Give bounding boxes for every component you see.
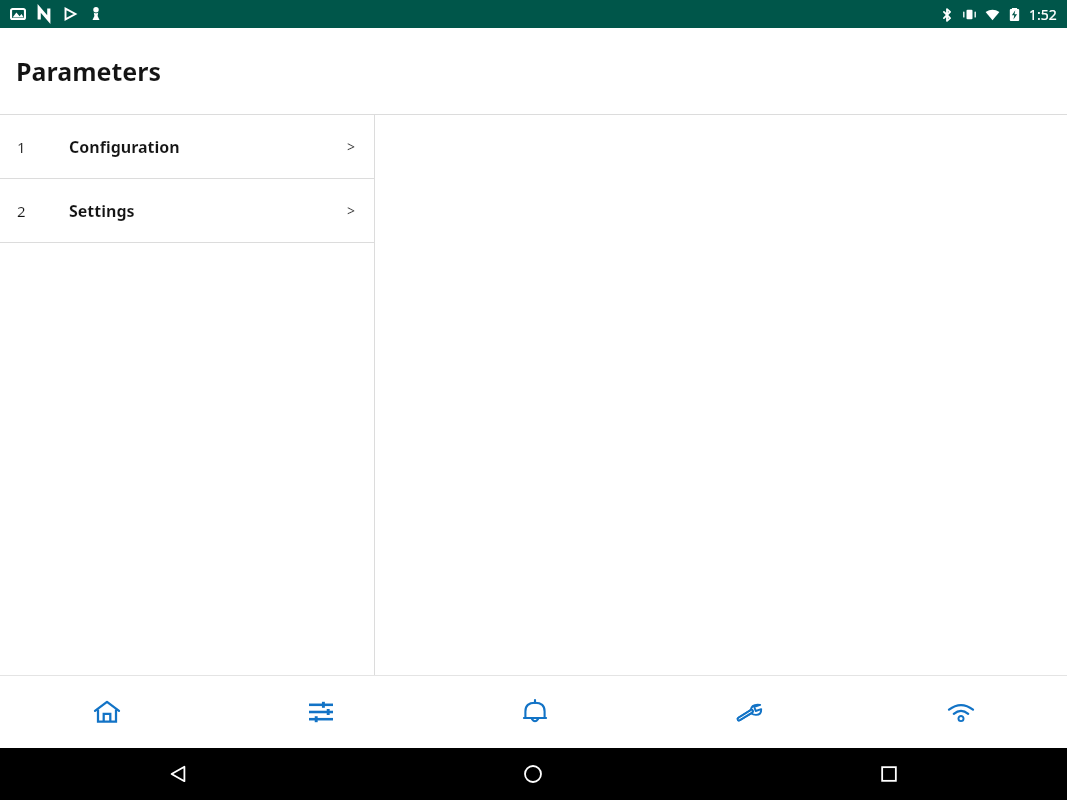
button[interactable]: Home	[0, 676, 214, 748]
button[interactable]: Back	[0, 748, 355, 800]
button[interactable]: Tune	[214, 676, 428, 748]
button[interactable]: Home	[355, 748, 711, 800]
staticText: Parameters	[16, 54, 161, 88]
button[interactable]: Tools	[641, 676, 854, 748]
button[interactable]: Notifications	[428, 676, 641, 748]
staticText: Settings	[69, 200, 135, 222]
staticText: >	[347, 137, 356, 156]
staticText: 1	[17, 137, 69, 157]
staticText: 2	[17, 201, 69, 221]
button[interactable]: 1	[0, 115, 374, 178]
staticText: Configuration	[69, 136, 180, 158]
staticText: >	[347, 201, 356, 220]
button[interactable]: 2	[0, 179, 374, 242]
button[interactable]: Recents	[711, 748, 1067, 800]
staticText: 1:52	[1029, 5, 1057, 24]
button[interactable]: Network	[854, 676, 1067, 748]
